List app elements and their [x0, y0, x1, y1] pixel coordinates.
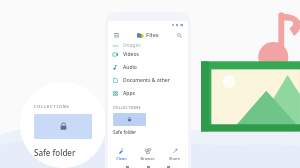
button[interactable]: Search [175, 31, 184, 40]
staticText: Images [123, 42, 141, 48]
other: Safe folder lock [59, 122, 68, 131]
staticText: Share [169, 156, 180, 161]
button[interactable]: Images [108, 42, 188, 48]
button[interactable]: Browse [134, 146, 161, 163]
staticText: Browse [140, 156, 155, 161]
staticText: Safe folder [34, 147, 76, 158]
button[interactable]: Safe folder [113, 113, 146, 126]
staticText: COLLECTIONS [34, 104, 70, 109]
other: Safe folder [127, 117, 132, 122]
staticText: Apps [123, 90, 135, 97]
button[interactable]: Share [161, 146, 188, 163]
button[interactable]: Safe folder lock [34, 114, 92, 139]
button[interactable]: Documents & other [108, 74, 188, 87]
staticText: Files [146, 31, 159, 39]
staticText: Documents & other [123, 77, 170, 84]
staticText: Safe folder [113, 129, 137, 135]
button[interactable]: Menu [112, 31, 121, 40]
button[interactable]: Clean [108, 146, 134, 163]
staticText: Clean [116, 156, 127, 161]
staticText: COLLECTIONS [113, 105, 141, 110]
button[interactable]: Audio [108, 61, 188, 74]
staticText: Audio [123, 64, 137, 71]
staticText: Videos [123, 51, 139, 58]
button[interactable]: Apps [108, 87, 188, 100]
button[interactable]: Videos [108, 48, 188, 61]
